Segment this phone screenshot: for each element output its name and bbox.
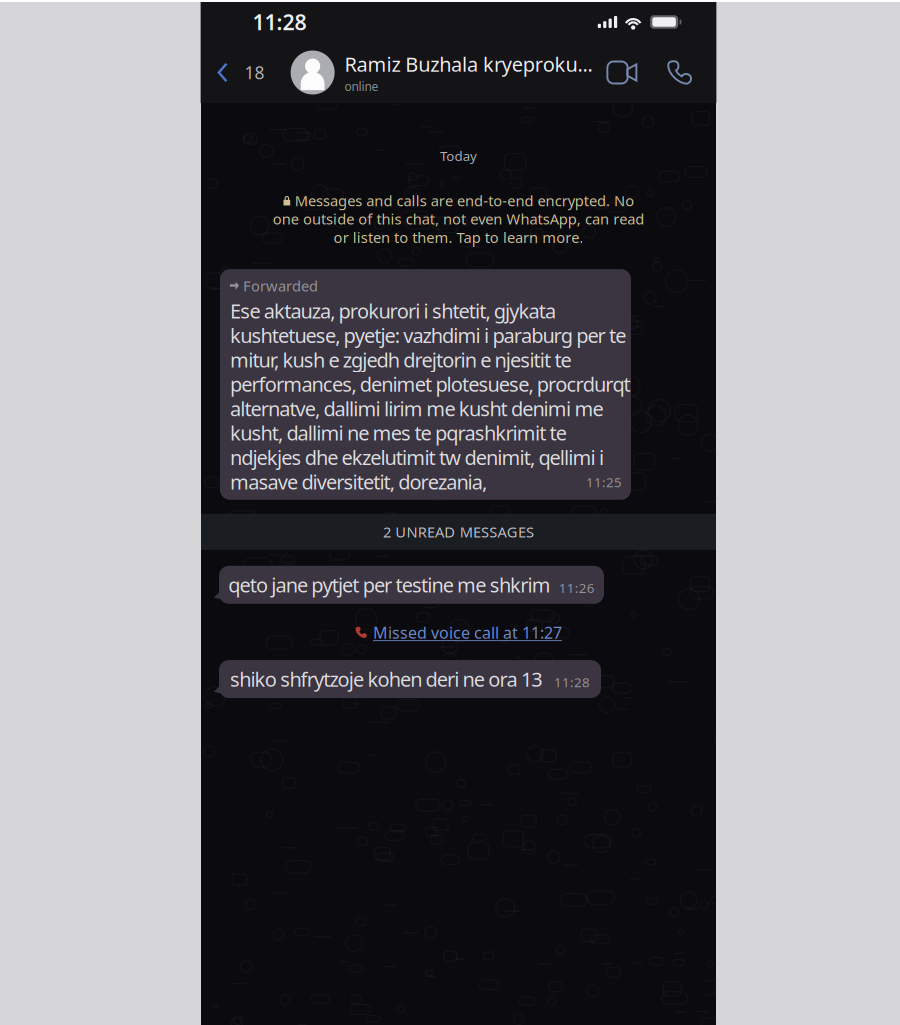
button[interactable]: Ramiz Buzhala kryeproku... xyxy=(291,42,602,103)
staticText: or listen to them. Tap to learn more. xyxy=(334,228,583,247)
staticText: Ramiz Buzhala kryeproku... xyxy=(345,51,592,77)
staticText: shiko shfrytzoje kohen deri ne ora 13 xyxy=(230,666,542,692)
button[interactable]: 18 xyxy=(201,42,291,103)
staticText: 11:25 xyxy=(586,473,622,491)
staticText: ndjekjes dhe ekzelutimit tw denimit, qel… xyxy=(230,444,604,470)
staticText: mitur, kush e zgjedh drejtorin e njesiti… xyxy=(230,346,572,373)
staticText: online xyxy=(345,78,379,94)
staticText: 11:28 xyxy=(253,8,307,36)
staticText: kusht, dallimi ne mes te pqrashkrimit te xyxy=(230,419,567,446)
staticText: kushtetuese, pyetje: vazhdimi i paraburg… xyxy=(230,322,626,348)
staticText: 11:28 xyxy=(554,673,590,691)
staticText: Ese aktauza, prokurori i shtetit, gjykat… xyxy=(230,297,556,324)
button[interactable]: Voice call xyxy=(641,42,716,103)
button[interactable]: Video call xyxy=(602,42,641,103)
button[interactable]: Missed voice call at 11:27 xyxy=(347,618,570,647)
staticText: Forwarded xyxy=(243,276,318,296)
staticText: performances, denimet plotesuese, procrd… xyxy=(230,371,631,397)
staticText: 11:26 xyxy=(559,579,595,597)
staticText: 18 xyxy=(245,61,265,84)
staticText: Today xyxy=(440,147,477,165)
staticText: 2 UNREAD MESSAGES xyxy=(383,522,534,542)
staticText: Messages and calls are end-to-end encryp… xyxy=(295,191,634,210)
staticText: qeto jane pytjet per testine me shkrim xyxy=(228,571,551,598)
staticText: alternatve, dallimi lirim me kusht denim… xyxy=(230,395,604,422)
staticText: Missed voice call at 11:27 xyxy=(373,622,562,643)
staticText: one outside of this chat, not even Whats… xyxy=(273,209,644,229)
staticText: masave diversitetit, dorezania, xyxy=(230,468,487,495)
